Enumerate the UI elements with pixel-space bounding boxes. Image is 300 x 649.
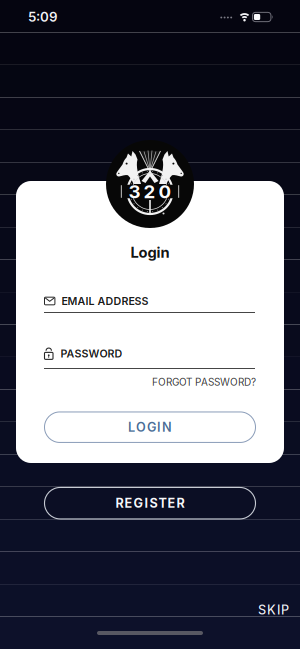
button[interactable]: R E G I S T E R [44,487,255,519]
staticText: L O G I N [128,419,172,435]
staticText: R E G I S T E R [115,495,184,511]
button[interactable]: Password [44,346,255,369]
button[interactable]: FORGOT PASSWORD? [152,376,256,388]
staticText: FORGOT PASSWORD? [152,376,256,388]
staticText: S K I P [258,602,289,618]
staticText: Login [130,244,169,261]
staticText: PASSWORD [60,347,122,360]
button[interactable]: S K I P [258,602,289,618]
button[interactable]: L O G I N [44,412,255,442]
staticText: 5:09 [28,9,58,25]
staticText: EMAIL ADDRESS [61,294,148,307]
staticText: 3 2 0 [128,180,171,203]
button[interactable]: Email Address [44,294,255,313]
